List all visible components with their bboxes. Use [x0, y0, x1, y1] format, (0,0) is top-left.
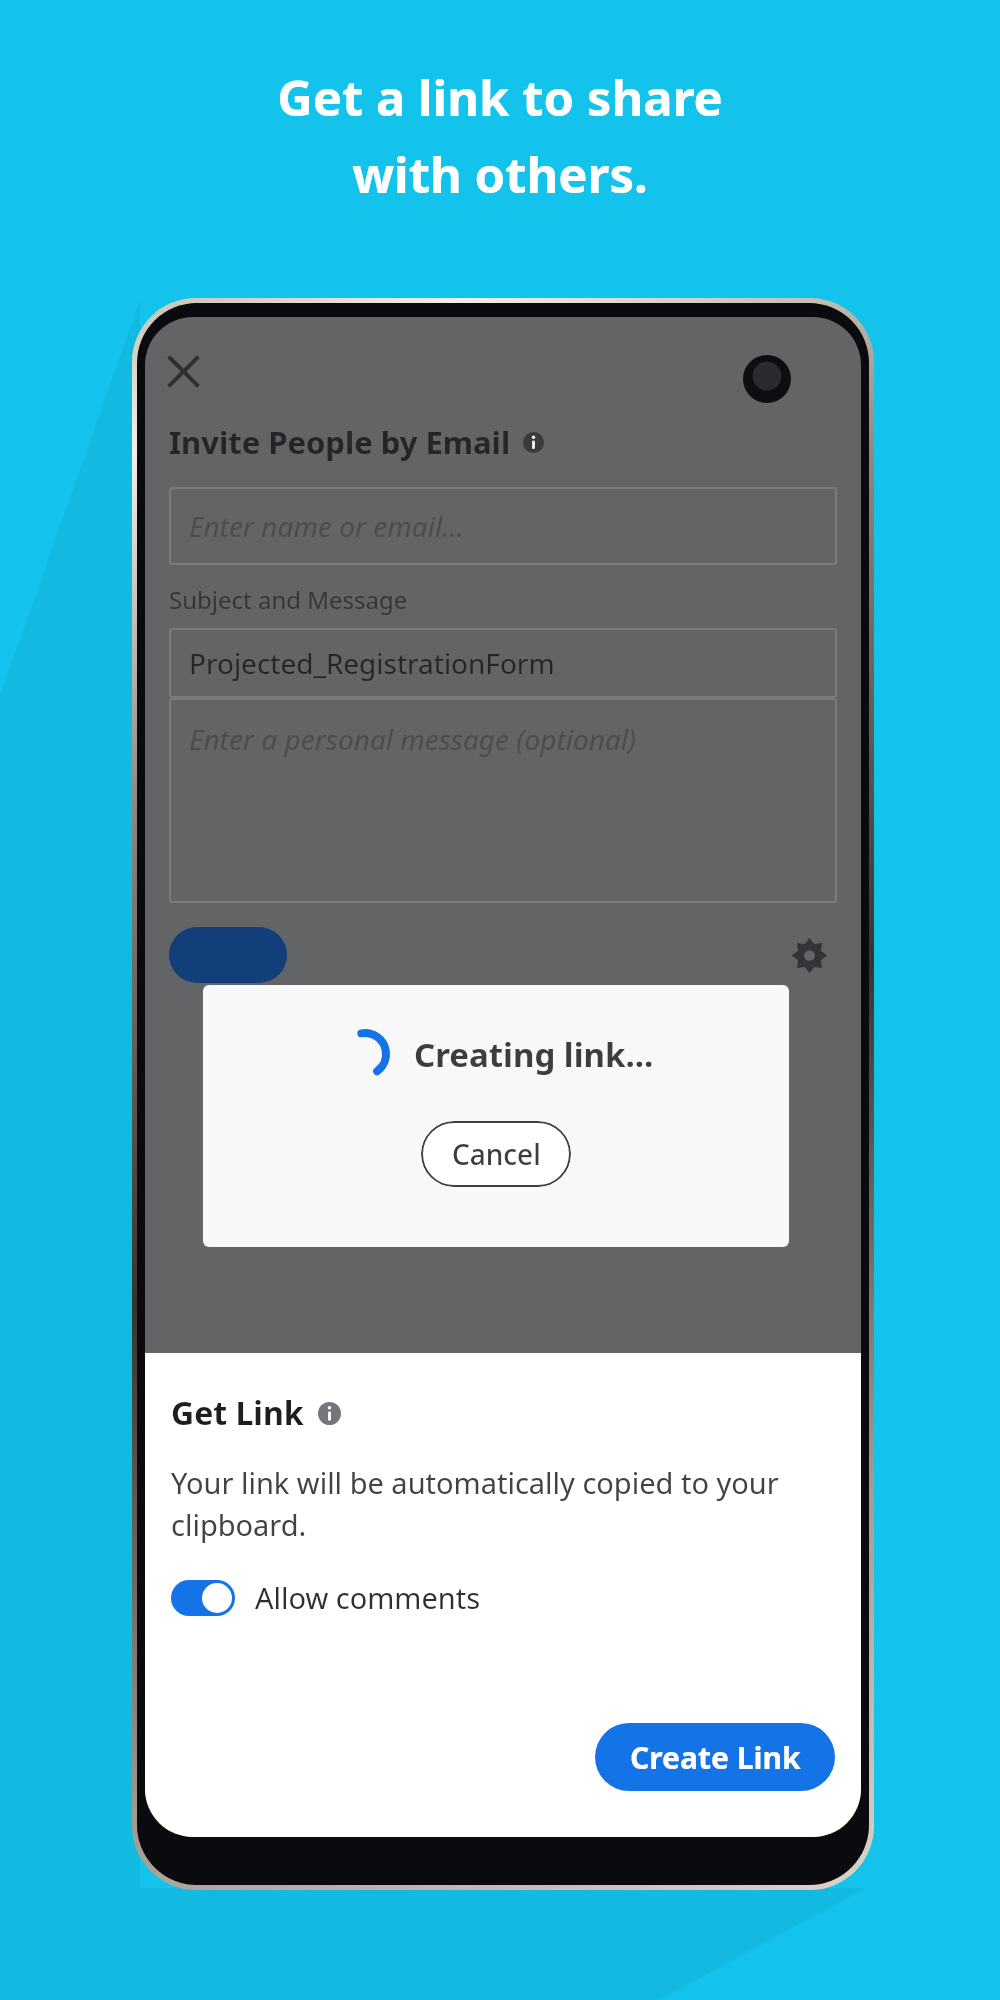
button[interactable]: Enter a personal message (optional) — [169, 698, 837, 903]
staticText: Enter name or email... — [189, 507, 464, 545]
staticText: Creating link... — [414, 1032, 654, 1077]
staticText: Cancel — [452, 1135, 541, 1173]
button[interactable]: Allow comments — [171, 1578, 481, 1617]
button[interactable]: Close — [155, 343, 211, 399]
staticText: with others. — [352, 141, 648, 208]
staticText: Your link will be automatically copied t… — [171, 1463, 779, 1544]
staticText: Get Link — [171, 1391, 304, 1435]
staticText: Invite People by Email — [169, 421, 511, 463]
button[interactable]: Projected_RegistrationForm — [169, 628, 837, 698]
staticText: Get a link to share — [277, 64, 723, 131]
button[interactable]: Enter name or email... — [169, 487, 837, 565]
button[interactable]: Cancel — [421, 1121, 571, 1187]
button[interactable]: Create Link — [595, 1723, 835, 1791]
staticText: Create Link — [630, 1737, 801, 1778]
button[interactable]: Settings — [781, 927, 837, 983]
staticText: Enter a personal message (optional) — [189, 720, 637, 758]
button[interactable]: Send invite — [169, 927, 287, 983]
staticText: Projected_RegistrationForm — [189, 644, 555, 682]
staticText: Subject and Message — [169, 583, 408, 616]
staticText: Allow comments — [255, 1578, 481, 1617]
